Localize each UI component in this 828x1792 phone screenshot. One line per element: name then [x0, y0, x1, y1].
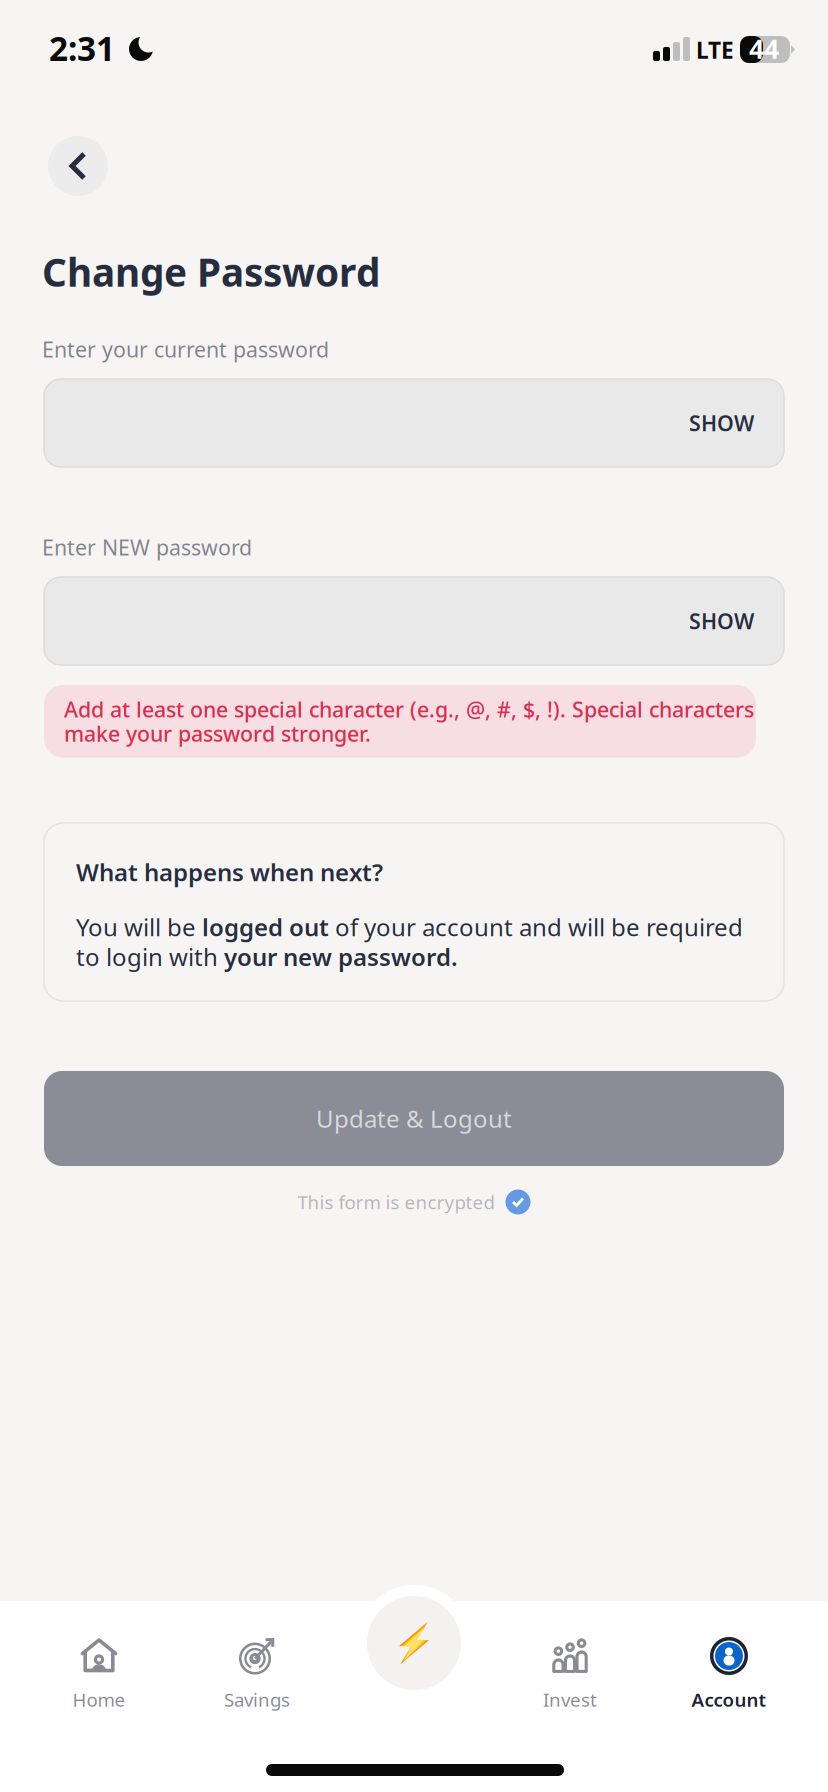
staticText: What happens when next?: [76, 856, 383, 888]
staticText: SHOW: [689, 409, 754, 437]
staticText: Update & Logout: [316, 1103, 512, 1134]
button[interactable]: SHOW: [44, 577, 784, 665]
staticText: 2:31: [49, 26, 115, 70]
button[interactable]: Update & Logout: [44, 1071, 784, 1166]
button[interactable]: Account: [659, 1601, 799, 1792]
staticText: 44: [749, 31, 779, 66]
staticText: SHOW: [689, 607, 754, 635]
staticText: Invest: [543, 1687, 597, 1712]
button[interactable]: Quick actions: [356, 1585, 472, 1701]
staticText: LTE: [696, 35, 734, 65]
staticText: This form is encrypted: [297, 1190, 494, 1214]
button[interactable]: SHOW: [44, 379, 784, 467]
staticText: Add at least one special character (e.g.…: [64, 695, 754, 748]
staticText: Account: [691, 1687, 766, 1712]
staticText: You will be logged out of your account a…: [76, 911, 743, 973]
button[interactable]: Back: [48, 136, 108, 196]
button[interactable]: Savings: [187, 1601, 327, 1792]
button[interactable]: Invest: [500, 1601, 640, 1792]
staticText: Enter your current password: [42, 335, 329, 363]
staticText: Home: [72, 1687, 125, 1712]
staticText: Change Password: [42, 246, 380, 297]
button[interactable]: Home: [29, 1601, 169, 1792]
staticText: Enter NEW password: [42, 533, 252, 561]
staticText: Savings: [224, 1687, 290, 1712]
